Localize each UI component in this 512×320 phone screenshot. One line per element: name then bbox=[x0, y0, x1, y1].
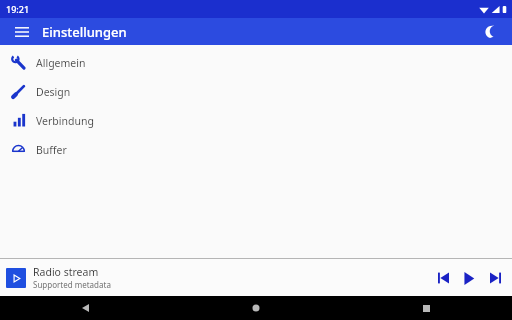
staticText: Radio stream bbox=[33, 265, 99, 279]
staticText: Einstellungen bbox=[42, 23, 127, 41]
staticText: 19:21 bbox=[6, 3, 30, 15]
button[interactable]: Home bbox=[170, 296, 341, 320]
button[interactable]: Buffer bbox=[0, 135, 512, 164]
button[interactable]: Next track bbox=[482, 265, 508, 291]
button[interactable]: Previous track bbox=[430, 265, 456, 291]
staticText: Allgemein bbox=[36, 56, 86, 70]
staticText: Supported metadata bbox=[33, 279, 111, 290]
staticText: Verbindung bbox=[36, 114, 94, 128]
button[interactable]: Back bbox=[0, 296, 170, 320]
button[interactable]: Allgemein bbox=[0, 48, 512, 77]
button[interactable]: Design bbox=[0, 77, 512, 106]
button[interactable]: Verbindung bbox=[0, 106, 512, 135]
button[interactable]: Play bbox=[456, 265, 482, 291]
button[interactable]: Toggle dark mode bbox=[478, 19, 504, 45]
button[interactable]: Open navigation drawer bbox=[9, 19, 35, 45]
staticText: Design bbox=[36, 85, 71, 99]
button[interactable]: Recent apps bbox=[341, 296, 512, 320]
staticText: Buffer bbox=[36, 143, 67, 157]
